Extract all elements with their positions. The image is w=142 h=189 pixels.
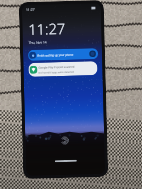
staticText: No harmful apps were detected: [38, 70, 75, 74]
staticText: Finish setting up your phone: [37, 53, 74, 58]
button[interactable]: Google Play Protect scanned: [28, 61, 98, 77]
staticText: Google Play Protect scanned: [38, 65, 74, 70]
staticText: 11:27: [26, 7, 35, 12]
button[interactable]: Finish setting up your phone: [28, 48, 98, 61]
staticText: Thu, Nov 14: [29, 40, 47, 45]
button[interactable]: Fingerprint unlock: [60, 136, 69, 145]
staticText: 11:27: [28, 18, 66, 39]
button[interactable]: Silence notification: [89, 50, 96, 57]
